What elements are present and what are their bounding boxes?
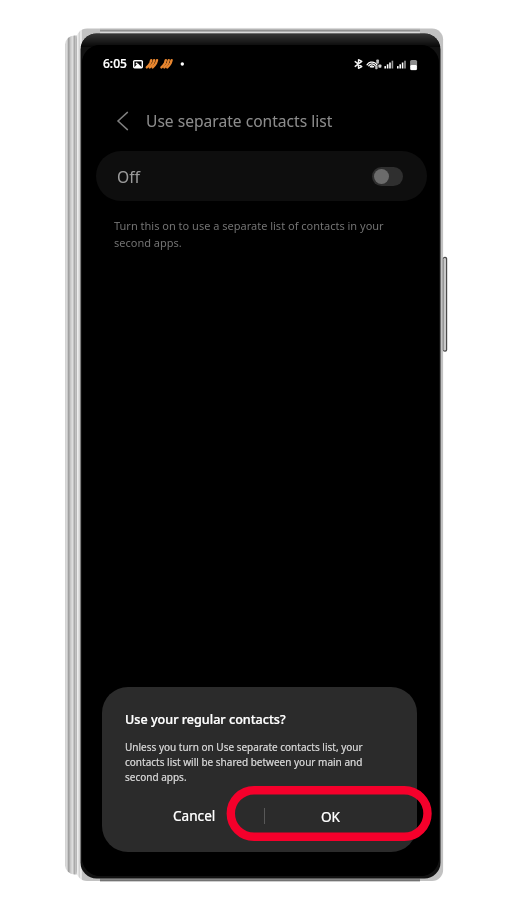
button[interactable]: Off bbox=[96, 151, 427, 201]
staticText: Turn this on to use a separate list of c… bbox=[114, 217, 394, 251]
staticText: Use separate contacts list bbox=[146, 110, 333, 131]
staticText: Unless you turn on Use separate contacts… bbox=[125, 740, 373, 785]
staticText: Use your regular contacts? bbox=[125, 711, 286, 728]
button[interactable] bbox=[372, 167, 403, 186]
button[interactable]: Cancel bbox=[102, 797, 264, 845]
button[interactable]: Navigate up bbox=[107, 105, 139, 137]
staticText: 6:05 bbox=[103, 55, 127, 71]
staticText: Off bbox=[117, 166, 140, 187]
staticText: Cancel bbox=[173, 806, 216, 825]
button[interactable]: OK bbox=[264, 797, 417, 845]
staticText: OK bbox=[321, 807, 341, 826]
